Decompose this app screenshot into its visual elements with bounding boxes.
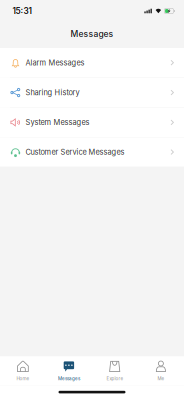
button[interactable]: Me [138, 356, 184, 385]
staticText: Explore [106, 376, 123, 381]
staticText: Me [157, 376, 164, 381]
staticText: Customer Service Messages [26, 147, 125, 156]
button[interactable]: Sharing History [0, 78, 184, 108]
button[interactable]: Alarm Messages [0, 48, 184, 78]
button[interactable]: Home [0, 356, 46, 385]
staticText: Alarm Messages [26, 58, 85, 67]
staticText: Sharing History [26, 88, 80, 97]
staticText: 15:31 [13, 6, 32, 16]
staticText: Home [16, 376, 29, 381]
staticText: Messages [70, 29, 113, 39]
staticText: System Messages [26, 118, 90, 127]
button[interactable]: Messages [46, 356, 92, 385]
button[interactable]: Customer Service Messages [0, 138, 184, 167]
button[interactable]: System Messages [0, 108, 184, 137]
staticText: Messages [58, 376, 80, 381]
button[interactable]: Explore [92, 356, 138, 385]
